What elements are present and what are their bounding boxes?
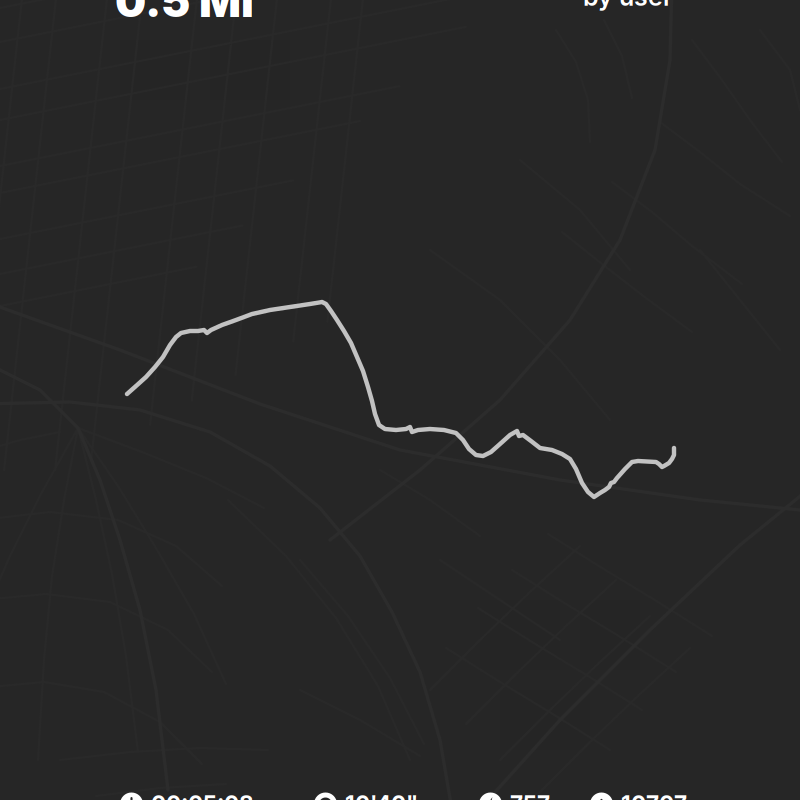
button[interactable]: 10707 xyxy=(590,790,790,800)
staticText: 10707 xyxy=(621,790,687,800)
button[interactable]: 10'40" xyxy=(314,790,514,800)
staticText: by user xyxy=(583,0,673,12)
staticText: 757 xyxy=(510,790,550,800)
staticText: 0.5 MI xyxy=(115,0,254,28)
staticText: 10'40" xyxy=(345,790,418,800)
button[interactable]: 00:05:08 xyxy=(120,790,320,800)
staticText: 00:05:08 xyxy=(151,790,254,800)
button[interactable]: 757 xyxy=(479,790,679,800)
